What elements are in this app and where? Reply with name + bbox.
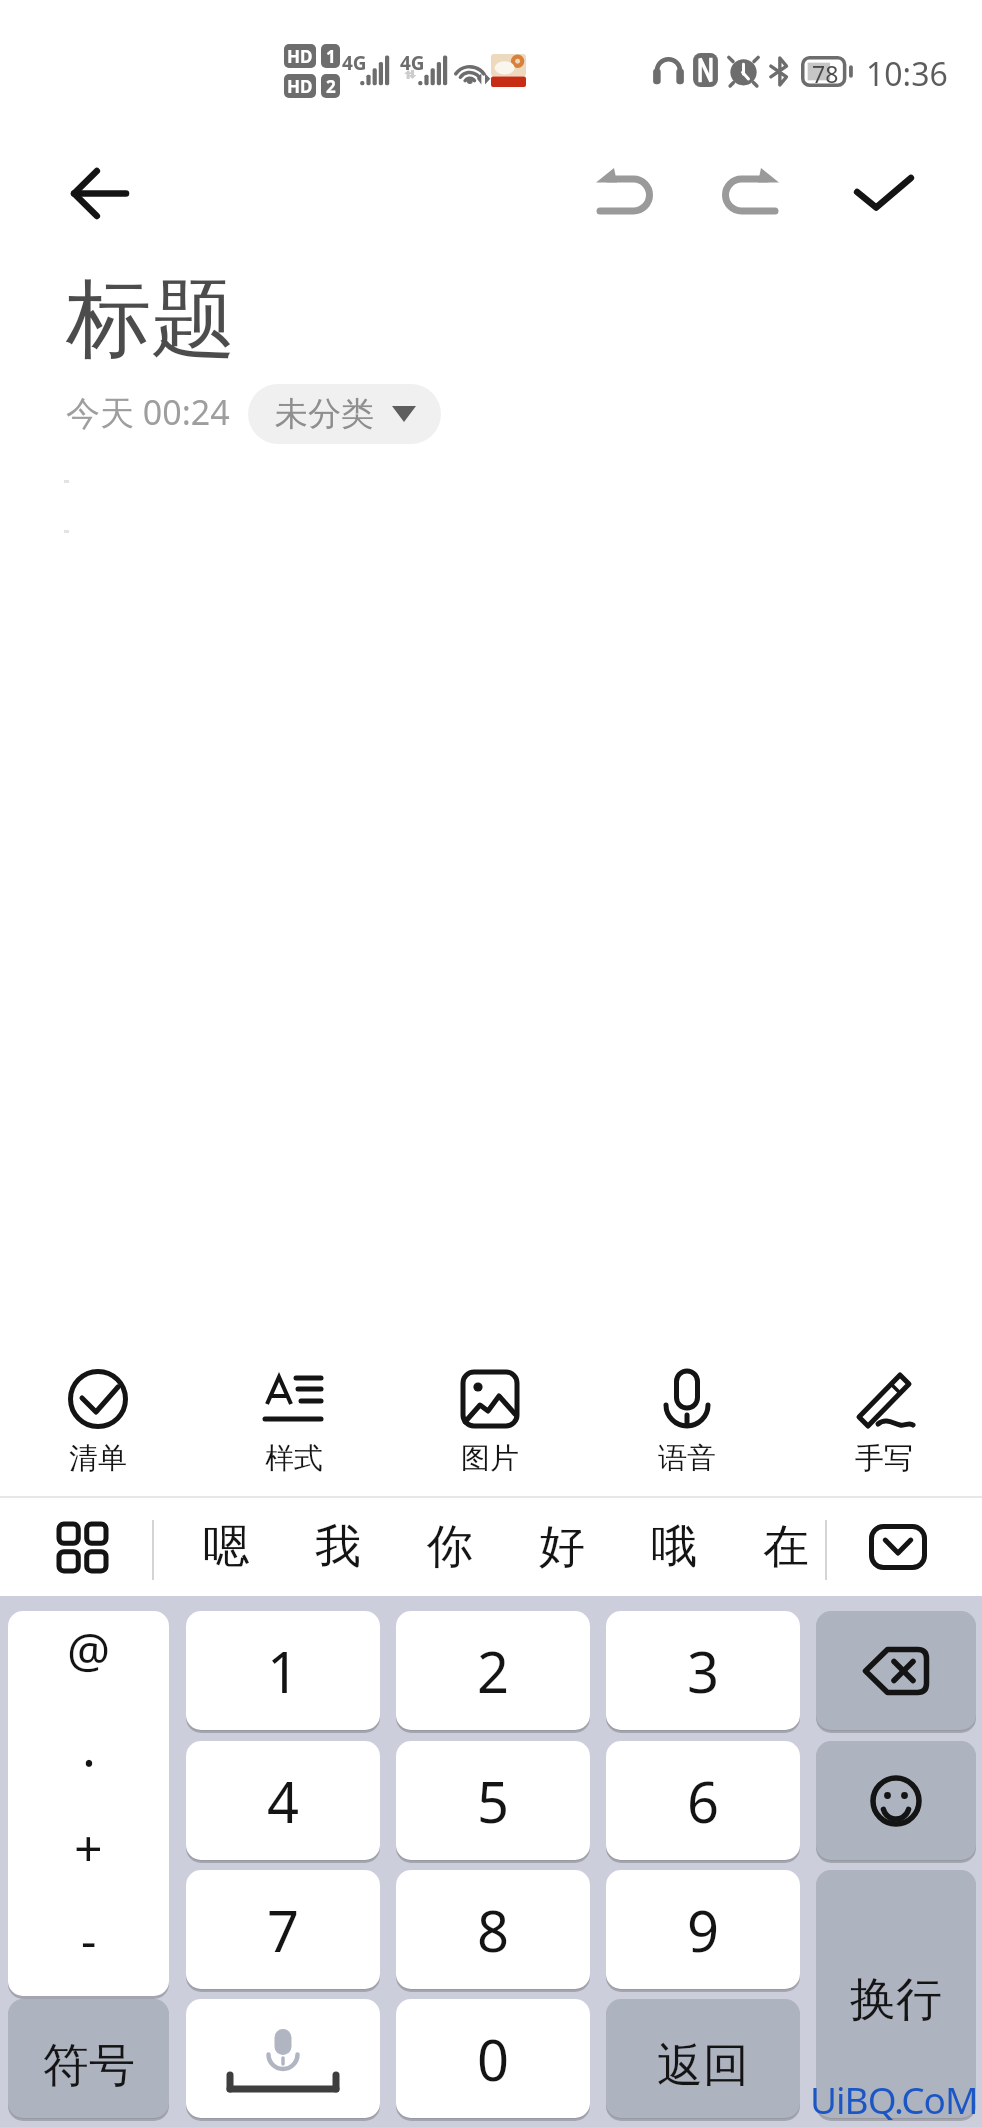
staticText: 未分类 bbox=[275, 393, 374, 435]
staticText: 符号 bbox=[43, 2037, 135, 2095]
button[interactable]: 6 bbox=[606, 1741, 800, 1860]
button[interactable]: - bbox=[8, 1889, 169, 1989]
button[interactable]: Undo bbox=[576, 145, 672, 241]
button[interactable]: 你 bbox=[394, 1498, 506, 1596]
button[interactable]: 清单 bbox=[0, 1330, 196, 1498]
button[interactable]: 在 bbox=[730, 1498, 842, 1596]
staticText: 语音 bbox=[658, 1440, 716, 1477]
staticText: 我 bbox=[315, 1518, 361, 1576]
button[interactable]: 8 bbox=[396, 1870, 590, 1989]
staticText: 清单 bbox=[69, 1440, 127, 1477]
button[interactable]: + bbox=[8, 1802, 169, 1892]
staticText: - bbox=[81, 1907, 97, 1972]
staticText: 图片 bbox=[461, 1440, 519, 1477]
staticText: 4G bbox=[342, 50, 367, 76]
button[interactable]: 好 bbox=[506, 1498, 618, 1596]
staticText: 今天 00:24 bbox=[66, 389, 230, 435]
staticText: 好 bbox=[539, 1518, 585, 1576]
staticText: 标题 bbox=[66, 266, 236, 373]
staticText: 手写 bbox=[855, 1440, 913, 1477]
button[interactable]: Hide keyboard bbox=[850, 1506, 946, 1588]
staticText: 5 bbox=[477, 1763, 510, 1839]
button[interactable]: 我 bbox=[282, 1498, 394, 1596]
button[interactable]: 3 bbox=[606, 1611, 800, 1730]
staticText: 4 bbox=[267, 1763, 300, 1839]
staticText: 6 bbox=[687, 1763, 720, 1839]
button[interactable]: 符号 bbox=[8, 1999, 169, 2118]
button[interactable]: @ bbox=[8, 1611, 169, 1699]
button[interactable]: 手写 bbox=[786, 1330, 982, 1498]
button[interactable]: 返回 bbox=[606, 1999, 800, 2118]
staticText: 嗯 bbox=[203, 1518, 249, 1576]
staticText: 7 bbox=[267, 1892, 300, 1968]
staticText: + bbox=[74, 1813, 103, 1881]
staticText: 0 bbox=[477, 2021, 510, 2097]
staticText: 你 bbox=[427, 1518, 473, 1576]
button[interactable]: 语音 bbox=[589, 1330, 785, 1498]
button[interactable]: 5 bbox=[396, 1741, 590, 1860]
button[interactable]: Backspace bbox=[816, 1611, 976, 1730]
button[interactable]: 7 bbox=[186, 1870, 380, 1989]
staticText: 在 bbox=[763, 1518, 809, 1576]
staticText: HD bbox=[287, 75, 313, 98]
button[interactable]: Keyboard layouts bbox=[34, 1506, 130, 1588]
button[interactable]: 2 bbox=[396, 1611, 590, 1730]
staticText: HD bbox=[287, 45, 313, 68]
button[interactable]: 嗯 bbox=[170, 1498, 282, 1596]
staticText: 8 bbox=[477, 1892, 510, 1968]
staticText: 返回 bbox=[657, 2037, 749, 2095]
button[interactable]: · bbox=[8, 1703, 169, 1819]
staticText: 1 bbox=[267, 1633, 300, 1709]
staticText: · bbox=[82, 1726, 96, 1797]
staticText: 2 bbox=[326, 75, 336, 98]
staticText: 2 bbox=[477, 1633, 510, 1709]
staticText: 10:36 bbox=[866, 52, 948, 96]
button[interactable]: Space bbox=[186, 1999, 380, 2118]
button[interactable]: 9 bbox=[606, 1870, 800, 1989]
button[interactable]: 1 bbox=[186, 1611, 380, 1730]
staticText: 78 bbox=[812, 58, 839, 89]
staticText: 9 bbox=[687, 1892, 720, 1968]
button[interactable]: Done bbox=[836, 145, 932, 241]
button[interactable]: Emoji bbox=[816, 1741, 976, 1860]
button[interactable]: 哦 bbox=[618, 1498, 730, 1596]
button[interactable]: 4 bbox=[186, 1741, 380, 1860]
button[interactable]: Redo bbox=[703, 145, 799, 241]
staticText: UiBQ.CoM bbox=[810, 2074, 978, 2124]
button[interactable]: 未分类 bbox=[248, 384, 441, 444]
button[interactable]: Back bbox=[49, 145, 149, 241]
staticText: 4G bbox=[400, 50, 425, 76]
button[interactable]: @ bbox=[8, 1611, 169, 1996]
button[interactable]: 换行 bbox=[816, 1870, 976, 2118]
button[interactable]: 图片 bbox=[392, 1330, 588, 1498]
button[interactable]: 样式 bbox=[196, 1330, 392, 1498]
staticText: 换行 bbox=[850, 1971, 942, 2029]
button[interactable]: 0 bbox=[396, 1999, 590, 2118]
staticText: 1 bbox=[326, 45, 336, 68]
staticText: 3 bbox=[687, 1633, 720, 1709]
staticText: @ bbox=[67, 1617, 111, 1682]
staticText: 样式 bbox=[265, 1440, 323, 1477]
staticText: 哦 bbox=[651, 1518, 697, 1576]
